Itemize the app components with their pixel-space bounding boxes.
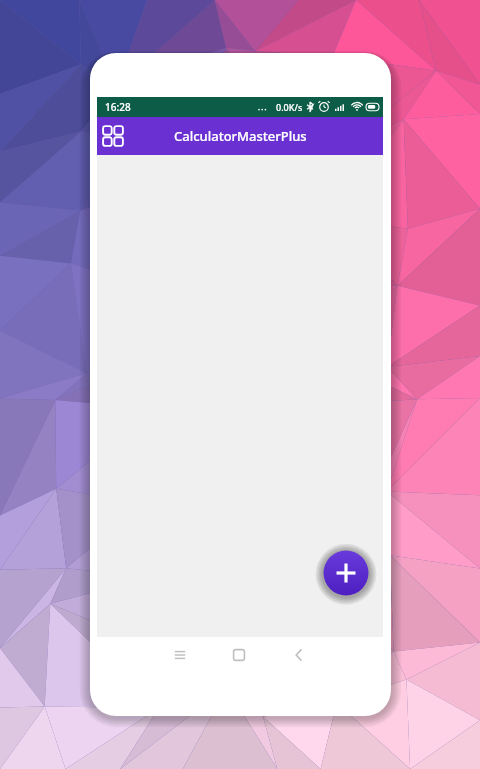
button[interactable]: Home <box>223 639 255 671</box>
button[interactable]: Recent apps <box>164 639 196 671</box>
button[interactable]: Add <box>322 549 370 597</box>
staticText: 16:28 <box>105 100 131 114</box>
staticText: 0.0K/s <box>276 101 303 113</box>
staticText: CalculatorMasterPlus <box>174 127 307 145</box>
button[interactable]: Back <box>283 639 315 671</box>
button[interactable]: Open navigation menu <box>98 121 128 151</box>
